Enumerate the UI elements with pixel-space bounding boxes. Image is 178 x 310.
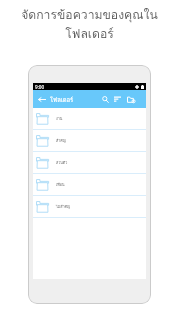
button[interactable]: สำคัญ <box>33 130 146 151</box>
button[interactable]: ไม่สำคัญ <box>33 196 146 217</box>
staticText: ส่วนตัว <box>56 160 68 166</box>
staticText: 9:00 <box>35 84 45 90</box>
staticText: สำคัญ <box>56 138 66 144</box>
staticText: ไม่สำคัญ <box>56 204 71 210</box>
staticText: จัดการข้อความของคุณใน <box>21 5 158 24</box>
staticText: โฟลเดอร์ <box>50 95 74 104</box>
button[interactable]: งาน <box>33 108 146 129</box>
button[interactable]: Folder settings <box>125 90 137 108</box>
button[interactable]: Back <box>36 90 48 108</box>
staticText: งาน <box>56 116 63 122</box>
staticText: โฟลเดอร์ <box>65 24 114 43</box>
button[interactable]: Search <box>99 90 111 108</box>
button[interactable]: เพื่อน <box>33 174 146 195</box>
button[interactable]: ส่วนตัว <box>33 152 146 173</box>
button[interactable]: Sort <box>111 90 123 108</box>
staticText: เพื่อน <box>56 182 65 188</box>
